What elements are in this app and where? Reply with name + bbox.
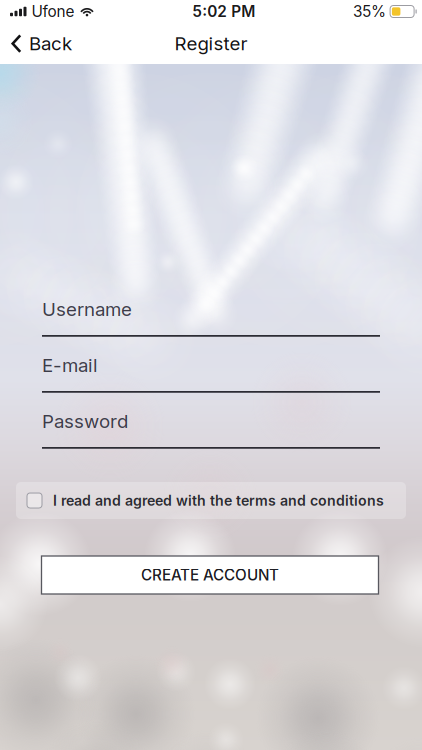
staticText: E-mail [42,354,98,377]
button[interactable]: CREATE ACCOUNT [42,556,379,594]
staticText: Back [29,32,72,55]
staticText: Password [42,410,128,433]
button[interactable]: I read and agreed with the terms and con… [16,482,406,519]
staticText: 35% [353,2,386,21]
button[interactable]: Back [0,24,82,63]
staticText: I read and agreed with the terms and con… [53,492,384,509]
staticText: 5:02 PM [192,2,255,21]
staticText: Register [174,32,247,55]
staticText: Username [42,298,132,321]
staticText: Ufone [31,2,74,21]
staticText: CREATE ACCOUNT [141,566,279,584]
